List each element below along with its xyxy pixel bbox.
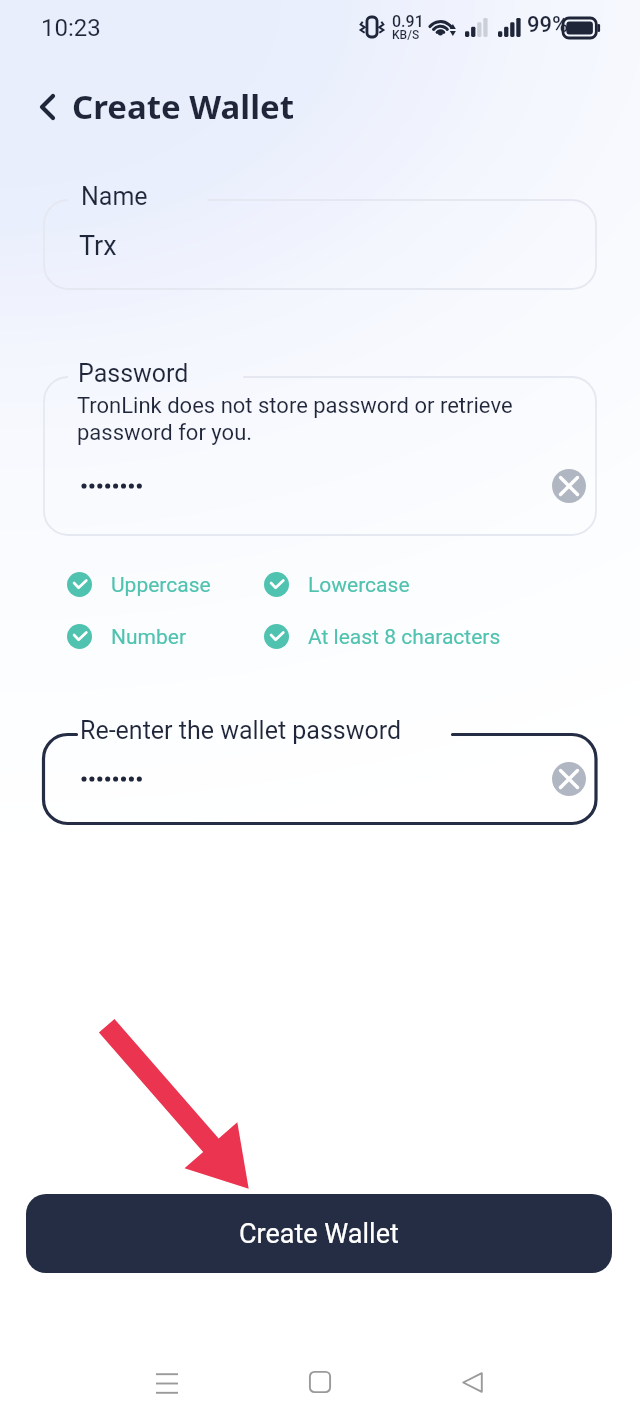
staticText: Number bbox=[111, 625, 187, 650]
staticText: 0.91 bbox=[392, 12, 424, 31]
button[interactable]: Number bbox=[66, 624, 366, 660]
staticText: 10:23 bbox=[41, 14, 101, 42]
staticText: Name bbox=[81, 182, 148, 211]
staticText: TronLink does not store password or retr… bbox=[77, 393, 513, 445]
staticText: Uppercase bbox=[111, 573, 211, 598]
button[interactable]: Uppercase bbox=[66, 572, 366, 608]
staticText: At least 8 characters bbox=[308, 625, 501, 650]
button[interactable]: Back bbox=[441, 1351, 503, 1413]
staticText: Password bbox=[78, 359, 189, 388]
button[interactable]: Recent apps bbox=[136, 1352, 198, 1414]
staticText: KB/S bbox=[392, 28, 420, 42]
button[interactable]: Create Wallet bbox=[26, 1194, 612, 1273]
staticText: Create Wallet bbox=[72, 84, 295, 129]
button[interactable]: Lowercase bbox=[263, 572, 563, 608]
staticText: 99% bbox=[527, 12, 569, 38]
button[interactable]: At least 8 characters bbox=[263, 624, 563, 660]
staticText: Create Wallet bbox=[239, 1218, 399, 1250]
button[interactable]: Home bbox=[289, 1351, 351, 1413]
staticText: Re-enter the wallet password bbox=[80, 716, 402, 745]
staticText: Trx bbox=[79, 230, 117, 262]
button[interactable]: Back bbox=[19, 79, 75, 135]
staticText: Lowercase bbox=[308, 573, 410, 598]
